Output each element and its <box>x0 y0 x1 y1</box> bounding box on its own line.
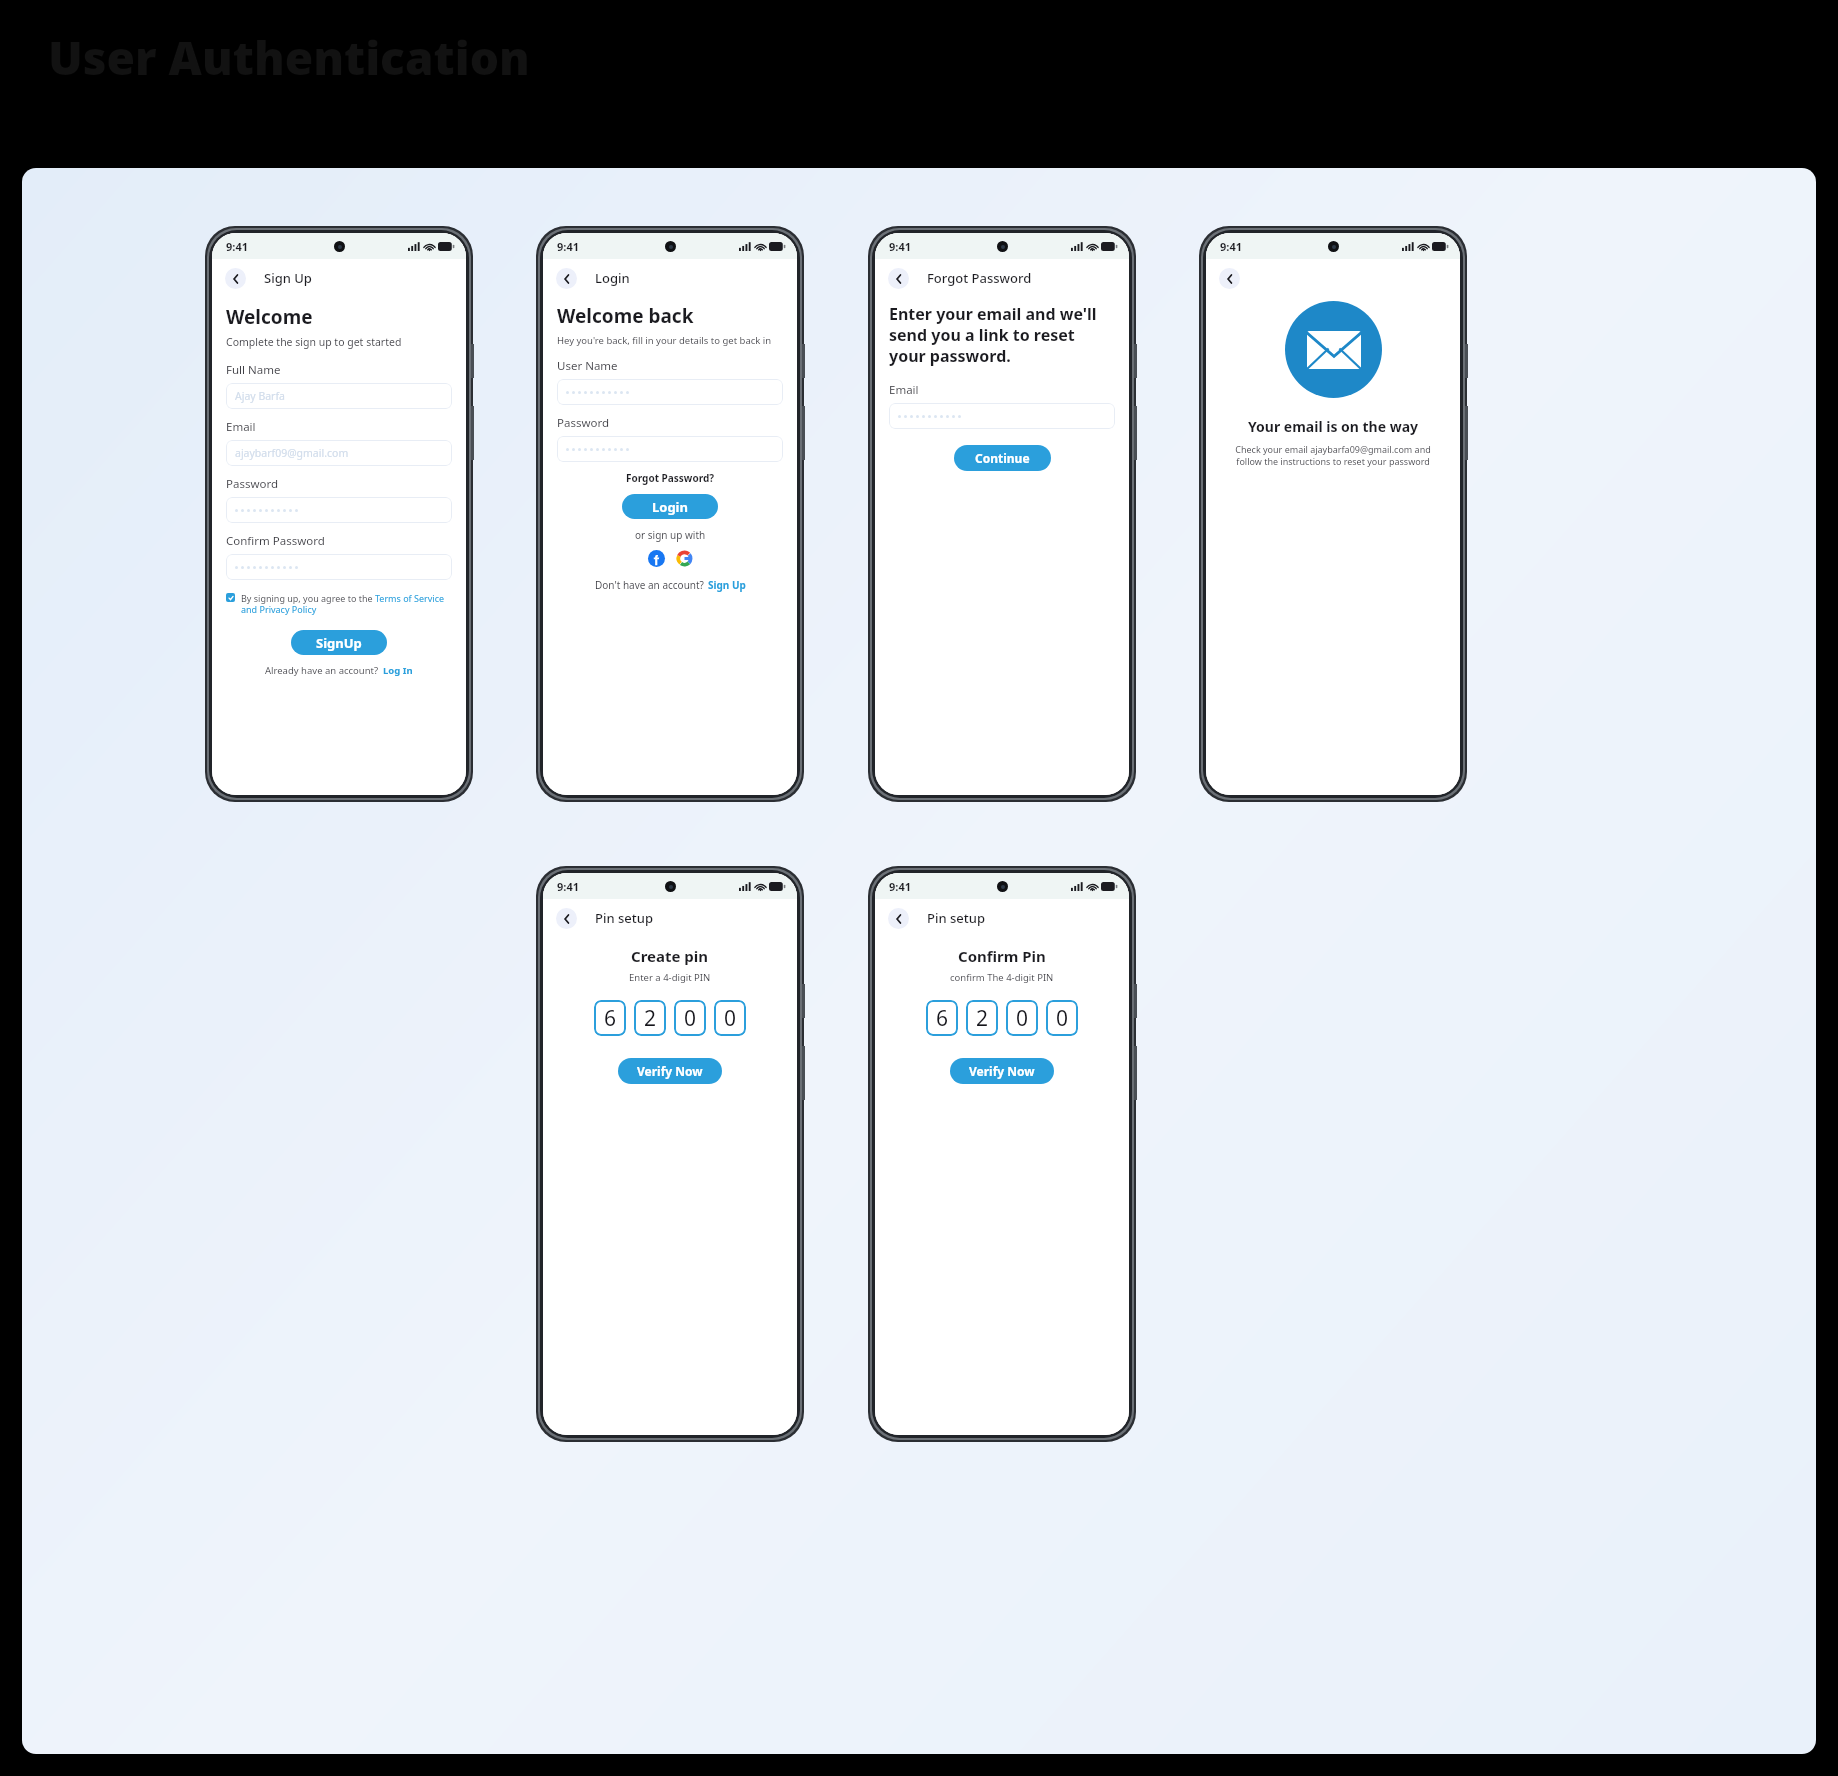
staticText: or sign up with <box>635 528 706 542</box>
staticText: Continue <box>975 450 1030 466</box>
button[interactable]: Back <box>556 908 577 929</box>
staticText: 6 <box>936 1004 949 1033</box>
staticText: Don't have an account? <box>595 578 704 592</box>
staticText: Login <box>595 269 630 287</box>
staticText: Verify Now <box>969 1063 1035 1079</box>
button[interactable]: Sign Up <box>708 578 746 592</box>
button[interactable]: 6 <box>926 1000 958 1036</box>
staticText: Verify Now <box>637 1063 703 1079</box>
staticText: 0 <box>684 1004 697 1033</box>
staticText: Confirm Password <box>226 533 325 549</box>
staticText: 0 <box>724 1004 737 1033</box>
button[interactable]: By signing up, you agree to the Terms of… <box>226 592 452 616</box>
button[interactable]: Continue <box>954 445 1051 471</box>
button[interactable]: Back <box>225 268 246 289</box>
staticText: Complete the sign up to get started <box>226 335 402 349</box>
staticText: Pin setup <box>927 909 985 927</box>
staticText: Enter your email and we'll send you a li… <box>889 303 1115 367</box>
staticText: Your email is on the way <box>1248 417 1419 436</box>
button[interactable] <box>557 436 783 462</box>
staticText: Pin setup <box>595 909 653 927</box>
staticText: Email <box>226 419 256 435</box>
button[interactable]: Back <box>888 908 909 929</box>
staticText: Enter a 4-digit PIN <box>629 971 711 984</box>
button[interactable]: Ajay Barfa <box>226 383 452 409</box>
staticText: Password <box>226 476 279 492</box>
button[interactable]: 0 <box>1046 1000 1078 1036</box>
staticText: User Authentication <box>48 26 530 89</box>
button[interactable]: Forgot Password? <box>626 471 715 485</box>
staticText: Sign Up <box>708 578 746 592</box>
staticText: 6 <box>604 1004 617 1033</box>
button[interactable]: 2 <box>634 1000 666 1036</box>
staticText: User Name <box>557 358 618 374</box>
staticText: Forgot Password <box>927 269 1032 287</box>
staticText: By signing up, you agree to the Terms of… <box>241 592 452 616</box>
staticText: 9:41 <box>889 239 911 254</box>
staticText: 9:41 <box>226 239 248 254</box>
button[interactable]: Back <box>556 268 577 289</box>
staticText: Forgot Password? <box>626 471 715 485</box>
button[interactable]: 6 <box>594 1000 626 1036</box>
button[interactable]: 2 <box>966 1000 998 1036</box>
staticText: 9:41 <box>889 879 911 894</box>
staticText: SignUp <box>316 634 362 652</box>
staticText: 9:41 <box>557 879 579 894</box>
staticText: 2 <box>644 1004 657 1033</box>
staticText: Confirm Pin <box>958 946 1046 966</box>
staticText: Welcome <box>226 304 313 330</box>
button[interactable] <box>557 379 783 405</box>
button[interactable]: 0 <box>1006 1000 1038 1036</box>
button[interactable] <box>226 554 452 580</box>
staticText: Password <box>557 415 610 431</box>
button[interactable]: Back <box>1219 268 1240 289</box>
staticText: Welcome back <box>557 303 694 329</box>
button[interactable]: Verify Now <box>618 1058 722 1084</box>
button[interactable]: ajaybarf09@gmail.com <box>226 440 452 466</box>
staticText: 2 <box>976 1004 989 1033</box>
button[interactable]: Log In <box>383 664 413 677</box>
button[interactable]: SignUp <box>291 630 387 655</box>
button[interactable]: Verify Now <box>950 1058 1054 1084</box>
staticText: Create pin <box>631 946 709 966</box>
staticText: 9:41 <box>1220 239 1242 254</box>
staticText: Full Name <box>226 362 281 378</box>
staticText: Ajay Barfa <box>235 389 285 403</box>
staticText: Email <box>889 382 919 398</box>
button[interactable] <box>889 403 1115 429</box>
button[interactable]: Login <box>622 494 718 519</box>
staticText: Check your email ajaybarfa09@gmail.com a… <box>1224 443 1442 468</box>
staticText: Already have an account? <box>265 664 379 677</box>
staticText: confirm The 4-digit PIN <box>950 971 1054 984</box>
staticText: 0 <box>1016 1004 1029 1033</box>
staticText: Sign Up <box>264 269 312 287</box>
staticText: 0 <box>1056 1004 1069 1033</box>
button[interactable]: Back <box>888 268 909 289</box>
button[interactable]: 0 <box>674 1000 706 1036</box>
staticText: Hey you're back, fill in your details to… <box>557 334 772 347</box>
button[interactable]: 0 <box>714 1000 746 1036</box>
staticText: 9:41 <box>557 239 579 254</box>
staticText: Log In <box>383 664 413 677</box>
staticText: Login <box>652 498 688 516</box>
button[interactable]: Sign in with Facebook <box>648 550 665 567</box>
button[interactable] <box>226 497 452 523</box>
button[interactable]: Sign in with Google <box>676 550 693 567</box>
staticText: ajaybarf09@gmail.com <box>235 446 349 460</box>
